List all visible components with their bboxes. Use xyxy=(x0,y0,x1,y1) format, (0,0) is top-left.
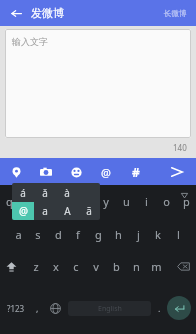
button[interactable]: g xyxy=(88,218,108,250)
button[interactable]: w xyxy=(19,185,38,218)
button[interactable]: ā xyxy=(78,202,100,220)
button[interactable]: x xyxy=(46,250,66,282)
button[interactable]: q xyxy=(0,185,19,218)
staticText: p xyxy=(183,194,190,209)
staticText: 输入文字 xyxy=(12,36,48,47)
button[interactable]: j xyxy=(128,218,148,250)
staticText: English xyxy=(98,304,122,314)
button[interactable]: t xyxy=(76,185,96,218)
staticText: s xyxy=(35,227,41,242)
button[interactable]: 退格 xyxy=(170,250,196,282)
staticText: a xyxy=(15,227,22,242)
button[interactable]: 回车 xyxy=(167,296,191,320)
staticText: 140 xyxy=(173,142,187,153)
button[interactable]: c xyxy=(66,250,86,282)
staticText: y xyxy=(103,194,109,209)
staticText: f xyxy=(76,227,80,242)
button[interactable]: n xyxy=(126,250,146,282)
staticText: k xyxy=(155,227,161,242)
staticText: u xyxy=(123,194,130,209)
button[interactable]: 逗号 xyxy=(29,297,45,319)
staticText: e xyxy=(44,194,51,209)
button[interactable]: 切换输入语言 xyxy=(45,298,65,318)
button[interactable]: v xyxy=(86,250,106,282)
staticText: x xyxy=(53,259,59,274)
button[interactable]: f xyxy=(68,218,88,250)
staticText: q xyxy=(6,194,13,209)
staticText: c xyxy=(73,259,79,274)
button[interactable]: m xyxy=(146,250,166,282)
button[interactable]: r xyxy=(57,185,76,218)
staticText: 发微博 xyxy=(31,6,64,20)
staticText: @ xyxy=(101,165,111,180)
button[interactable]: 长微博 xyxy=(162,6,189,21)
button[interactable]: ?123 xyxy=(3,297,29,319)
staticText: A xyxy=(64,204,71,218)
button[interactable]: A xyxy=(56,202,78,220)
staticText: i xyxy=(145,194,148,209)
button[interactable]: 返回 xyxy=(7,4,25,22)
button[interactable]: 空格 xyxy=(68,301,151,316)
staticText: @ xyxy=(19,204,28,218)
button[interactable]: k xyxy=(148,218,168,250)
staticText: b xyxy=(113,259,120,274)
staticText: l xyxy=(177,227,180,242)
button[interactable]: 话题 xyxy=(126,162,146,182)
staticText: j xyxy=(137,227,140,242)
button[interactable]: p xyxy=(176,185,196,218)
button[interactable]: Shift xyxy=(0,250,22,282)
staticText: t xyxy=(84,194,88,209)
staticText: g xyxy=(95,227,102,242)
staticText: ǎ xyxy=(42,186,48,200)
staticText: v xyxy=(93,259,99,274)
staticText: n xyxy=(133,259,140,274)
staticText: z xyxy=(33,259,39,274)
staticText: ā xyxy=(86,204,92,218)
button[interactable]: h xyxy=(108,218,128,250)
button[interactable]: @ xyxy=(12,202,34,220)
staticText: h xyxy=(115,227,122,242)
button[interactable]: z xyxy=(26,250,46,282)
button[interactable]: 句号 xyxy=(151,297,167,319)
button[interactable]: 表情 xyxy=(66,162,86,182)
staticText: ?123 xyxy=(7,303,25,314)
button[interactable]: á xyxy=(12,183,34,202)
button[interactable]: 输入文字 xyxy=(5,29,191,138)
button[interactable]: d xyxy=(48,218,68,250)
button[interactable]: y xyxy=(96,185,116,218)
button[interactable]: b xyxy=(106,250,126,282)
button[interactable]: ǎ xyxy=(34,183,56,202)
button[interactable]: 位置 xyxy=(6,162,26,182)
button[interactable]: 发送 xyxy=(167,162,187,182)
staticText: à xyxy=(64,186,70,200)
button[interactable]: i xyxy=(136,185,156,218)
button[interactable]: l xyxy=(168,218,188,250)
staticText: w xyxy=(24,194,33,209)
button[interactable]: e xyxy=(38,185,57,218)
button[interactable]: u xyxy=(116,185,136,218)
button[interactable]: a xyxy=(8,218,28,250)
staticText: a xyxy=(42,204,48,218)
staticText: . xyxy=(158,302,161,314)
staticText: # xyxy=(132,164,140,180)
button[interactable]: 相机 xyxy=(36,162,56,182)
staticText: r xyxy=(64,194,69,209)
staticText: d xyxy=(55,227,62,242)
staticText: 长微博 xyxy=(164,9,187,18)
button[interactable]: o xyxy=(156,185,176,218)
button[interactable]: s xyxy=(28,218,48,250)
button[interactable]: à xyxy=(56,183,78,202)
button[interactable]: a xyxy=(34,202,56,220)
staticText: á xyxy=(20,186,26,200)
button[interactable]: 收起键盘 xyxy=(178,189,190,201)
staticText: o xyxy=(163,194,170,209)
staticText: m xyxy=(151,259,162,274)
staticText: , xyxy=(36,302,39,314)
button[interactable]: 提到某人 xyxy=(96,162,116,182)
